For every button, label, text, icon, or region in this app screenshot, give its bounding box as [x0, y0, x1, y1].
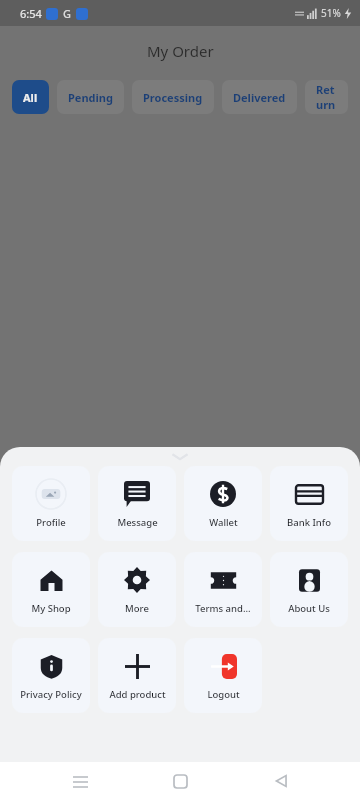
staticText: More — [125, 602, 149, 615]
staticText: My Order — [147, 41, 214, 61]
staticText: Delivered — [233, 90, 286, 105]
button[interactable]: Home — [159, 762, 201, 800]
button[interactable]: Processing — [132, 80, 214, 114]
staticText: Privacy Policy — [20, 688, 82, 701]
staticText: About Us — [288, 602, 330, 615]
staticText: Logout — [207, 688, 240, 701]
staticText: G — [63, 6, 71, 21]
staticText: My Shop — [31, 602, 71, 615]
button[interactable]: Delivered — [222, 80, 297, 114]
staticText: 51% — [321, 6, 341, 20]
button[interactable]: All — [12, 80, 49, 114]
button[interactable]: Wallet — [184, 466, 262, 541]
staticText: Pending — [68, 90, 113, 105]
staticText: All — [23, 90, 38, 105]
button[interactable]: Profile — [12, 466, 90, 541]
button[interactable]: Pending — [57, 80, 124, 114]
staticText: Terms and... — [195, 602, 251, 615]
staticText: Profile — [36, 516, 66, 529]
button[interactable]: Back — [260, 762, 302, 800]
staticText: Message — [117, 516, 158, 529]
button[interactable]: Return — [305, 80, 348, 114]
button[interactable]: My Shop — [12, 552, 90, 627]
button[interactable]: Message — [98, 466, 176, 541]
staticText: Return — [316, 82, 337, 112]
button[interactable]: More — [98, 552, 176, 627]
button[interactable]: Add product — [98, 638, 176, 713]
staticText: Processing — [143, 90, 203, 105]
staticText: 6:54 — [20, 6, 42, 21]
button[interactable]: Logout — [184, 638, 262, 713]
staticText: Wallet — [209, 516, 238, 529]
button[interactable]: Privacy Policy — [12, 638, 90, 713]
button[interactable]: Bank Info — [270, 466, 348, 541]
button[interactable]: Recents — [59, 762, 101, 800]
button[interactable]: Terms and... — [184, 552, 262, 627]
staticText: Add product — [109, 688, 166, 701]
staticText: Bank Info — [287, 516, 331, 529]
button[interactable]: About Us — [270, 552, 348, 627]
